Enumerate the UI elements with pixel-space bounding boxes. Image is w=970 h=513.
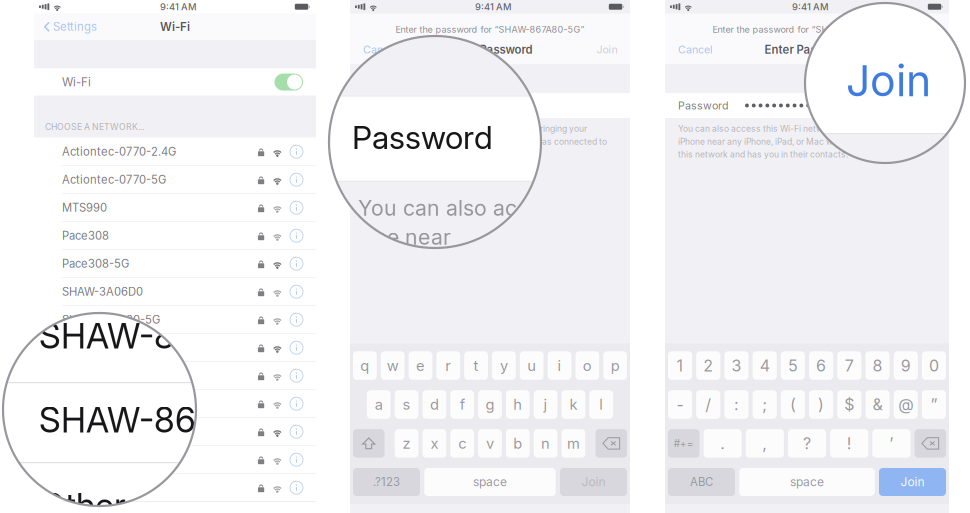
button[interactable]: ! xyxy=(830,429,868,458)
button[interactable]: . xyxy=(704,429,742,458)
button[interactable]: t xyxy=(464,351,488,380)
button[interactable]: v xyxy=(478,429,502,458)
button[interactable]: x xyxy=(422,429,446,458)
staticText: 9:41 AM xyxy=(792,1,829,12)
button[interactable]: s xyxy=(395,390,418,419)
button[interactable]: Actiontec-0770-5G xyxy=(34,166,316,194)
button[interactable]: TELUS0631 xyxy=(34,390,316,418)
button[interactable]: Delete xyxy=(595,429,627,458)
staticText: $ xyxy=(844,395,854,414)
button[interactable]: space xyxy=(739,468,875,496)
staticText: z xyxy=(403,434,411,452)
button[interactable]: TELUS5522 xyxy=(34,418,316,446)
button[interactable]: z xyxy=(395,429,418,458)
staticText: e xyxy=(416,357,425,374)
button[interactable]: w xyxy=(381,351,404,380)
button[interactable]: p xyxy=(603,351,627,380)
button[interactable]: @ xyxy=(894,390,918,419)
button[interactable]: SHAW-867A80 xyxy=(34,334,316,362)
button[interactable]: d xyxy=(422,390,446,419)
staticText: Enter the password for “SHAW-867A80-5G” xyxy=(712,24,901,35)
button[interactable]: Shift xyxy=(353,429,384,458)
button[interactable]: : xyxy=(724,390,748,419)
button[interactable]: , xyxy=(746,429,784,458)
button[interactable]: 2 xyxy=(696,351,720,380)
button[interactable]: n xyxy=(534,429,557,458)
button[interactable]: b xyxy=(506,429,530,458)
staticText: m xyxy=(567,434,580,452)
button[interactable]: a xyxy=(367,390,391,419)
staticText: Enter the password for “SHAW-867A80-5G” xyxy=(395,24,584,35)
button[interactable]: ’ xyxy=(872,429,910,458)
button[interactable]: 4 xyxy=(753,351,777,380)
staticText: TELUS8822 xyxy=(62,453,125,466)
button[interactable]: l xyxy=(589,390,613,419)
button[interactable]: SHAW-3A06D0 xyxy=(34,278,316,306)
button[interactable]: & xyxy=(865,390,890,419)
staticText: Password xyxy=(352,118,493,157)
staticText: i xyxy=(557,357,561,374)
button[interactable]: 8 xyxy=(865,351,890,380)
button[interactable]: - xyxy=(668,390,692,419)
button[interactable]: ( xyxy=(781,390,805,419)
button[interactable]: Cancel xyxy=(350,35,408,64)
button[interactable]: g xyxy=(478,390,502,419)
staticText: r xyxy=(445,357,451,374)
button[interactable]: ABC xyxy=(668,468,735,496)
staticText: 2 xyxy=(703,356,713,375)
button[interactable]: o xyxy=(575,351,599,380)
button[interactable]: Join xyxy=(560,468,627,496)
button[interactable]: r xyxy=(436,351,460,380)
button[interactable]: ) xyxy=(809,390,833,419)
button[interactable]: m xyxy=(562,429,585,458)
staticText: TELUS5522 xyxy=(62,425,125,438)
button[interactable]: ; xyxy=(753,390,777,419)
button[interactable]: Other xyxy=(34,474,316,502)
staticText: Wi-Fi xyxy=(160,20,190,34)
button[interactable]: SHAW-CE8270 xyxy=(34,362,316,390)
button[interactable]: Join xyxy=(879,468,946,496)
button[interactable]: i xyxy=(548,351,571,380)
button[interactable]: q xyxy=(353,351,377,380)
button[interactable]: Cancel xyxy=(665,35,723,64)
button[interactable]: $ xyxy=(837,390,861,419)
staticText: w xyxy=(387,357,399,374)
button[interactable]: / xyxy=(696,390,720,419)
staticText: SHAW-3A06D0 xyxy=(62,285,143,298)
button[interactable]: Pace308 xyxy=(34,222,316,250)
button[interactable]: space xyxy=(424,468,556,496)
button[interactable]: Actiontec-0770-2.4G xyxy=(34,138,316,166)
button[interactable]: 7 xyxy=(837,351,861,380)
button[interactable]: f xyxy=(450,390,474,419)
button[interactable]: Pace308-5G xyxy=(34,250,316,278)
button[interactable]: c xyxy=(450,429,474,458)
button[interactable]: 6 xyxy=(809,351,833,380)
button[interactable]: j xyxy=(534,390,557,419)
button[interactable]: Delete xyxy=(914,429,946,458)
button[interactable]: u xyxy=(520,351,544,380)
staticText: ne near xyxy=(374,224,451,250)
button[interactable]: .?123 xyxy=(353,468,420,496)
button[interactable]: MTS990 xyxy=(34,194,316,222)
button[interactable]: ” xyxy=(922,390,946,419)
staticText: You can also access this Wi-Fi network b… xyxy=(678,123,902,134)
button[interactable]: ? xyxy=(788,429,826,458)
staticText: Password xyxy=(678,99,729,112)
button[interactable]: TELUS8822 xyxy=(34,446,316,474)
button[interactable]: 3 xyxy=(724,351,748,380)
button[interactable]: 9 xyxy=(894,351,918,380)
button[interactable]: SHAW-867A80-5G xyxy=(34,306,316,334)
button[interactable]: Settings xyxy=(34,13,105,40)
staticText: @ xyxy=(898,395,913,414)
button[interactable]: 1 xyxy=(668,351,692,380)
button[interactable]: #+= xyxy=(668,429,699,458)
button[interactable]: 0 xyxy=(922,351,946,380)
button[interactable]: Join xyxy=(586,35,630,64)
button[interactable]: e xyxy=(409,351,432,380)
button[interactable]: y xyxy=(492,351,516,380)
button[interactable]: 5 xyxy=(781,351,805,380)
button[interactable]: k xyxy=(562,390,585,419)
button[interactable]: h xyxy=(506,390,530,419)
